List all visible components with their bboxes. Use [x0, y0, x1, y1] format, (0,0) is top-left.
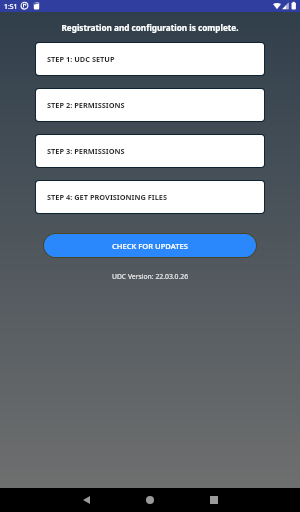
staticText: STEP 2: PERMISSIONS: [47, 100, 125, 110]
staticText: Registration and configuration is comple…: [0, 22, 300, 33]
button[interactable]: STEP 4: GET PROVISIONING FILES: [36, 181, 264, 213]
button[interactable]: Back: [54, 488, 118, 512]
button[interactable]: CHECK FOR UPDATES: [44, 234, 256, 257]
button[interactable]: Home: [118, 488, 182, 512]
button[interactable]: STEP 2: PERMISSIONS: [36, 89, 264, 121]
staticText: UDC Version: 22.03.0.26: [0, 272, 300, 281]
staticText: STEP 4: GET PROVISIONING FILES: [47, 192, 168, 202]
staticText: STEP 1: UDC SETUP: [47, 54, 115, 64]
button[interactable]: STEP 3: PERMISSIONS: [36, 135, 264, 167]
staticText: CHECK FOR UPDATES: [112, 241, 188, 251]
staticText: STEP 3: PERMISSIONS: [47, 146, 125, 156]
staticText: 1:51: [4, 2, 18, 11]
button[interactable]: Recents: [182, 488, 246, 512]
button[interactable]: STEP 1: UDC SETUP: [36, 43, 264, 75]
